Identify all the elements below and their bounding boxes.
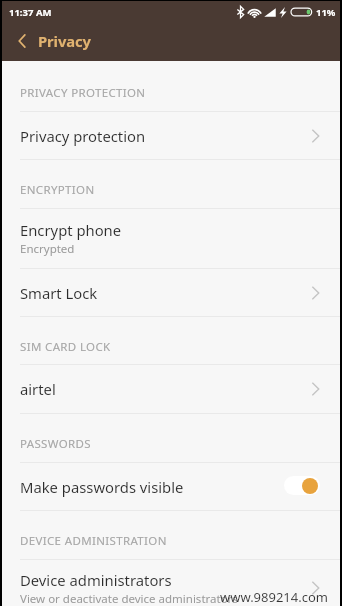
staticText: Encrypt phone [20, 220, 122, 240]
button[interactable]: Back [2, 23, 38, 61]
staticText: 11% [316, 6, 336, 19]
button[interactable]: Smart Lock [2, 269, 340, 316]
staticText: Encrypted [20, 241, 75, 257]
staticText: Privacy [38, 31, 91, 51]
staticText: ENCRYPTION [20, 182, 95, 198]
staticText: www.989214.com [220, 588, 328, 606]
button[interactable]: Privacy protection [2, 112, 340, 160]
staticText: Privacy protection [20, 126, 146, 146]
staticText: View or deactivate device administrators [20, 591, 238, 606]
staticText: airtel [20, 379, 56, 399]
staticText: SIM CARD LOCK [20, 339, 111, 355]
staticText: PASSWORDS [20, 436, 91, 452]
button[interactable]: airtel [2, 365, 340, 413]
button[interactable]: Encrypt phone [2, 209, 340, 268]
button[interactable]: Device administrators [2, 560, 340, 606]
staticText: 11:37 AM [9, 6, 52, 19]
staticText: Smart Lock [20, 283, 98, 303]
button[interactable]: Make passwords visible [2, 463, 340, 511]
staticText: Make passwords visible [20, 477, 184, 497]
staticText: PRIVACY PROTECTION [20, 85, 146, 101]
staticText: Device administrators [20, 570, 172, 590]
staticText: DEVICE ADMINISTRATION [20, 533, 167, 549]
